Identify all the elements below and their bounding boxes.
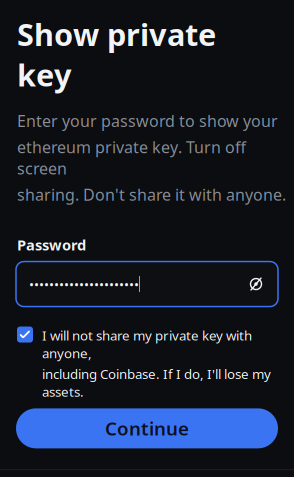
button[interactable]: ••••••••••••••••••••••	[16, 261, 278, 306]
staticText: including Coinbase. If I do, I'll lose m…	[42, 365, 271, 400]
staticText: Show private key	[17, 14, 216, 95]
staticText: Continue	[105, 416, 189, 441]
staticText: ••••••••••••••••••••••	[29, 275, 139, 293]
button[interactable]: Continue	[16, 408, 278, 448]
staticText: Enter your password to show your	[17, 110, 278, 131]
staticText: ethereum private key. Turn off screen	[17, 136, 246, 179]
button[interactable]: I will not share my private key with any…	[17, 326, 284, 400]
staticText: I will not share my private key with any…	[42, 326, 252, 362]
staticText: Password	[17, 235, 86, 255]
staticText: sharing. Don't share it with anyone.	[17, 184, 286, 205]
